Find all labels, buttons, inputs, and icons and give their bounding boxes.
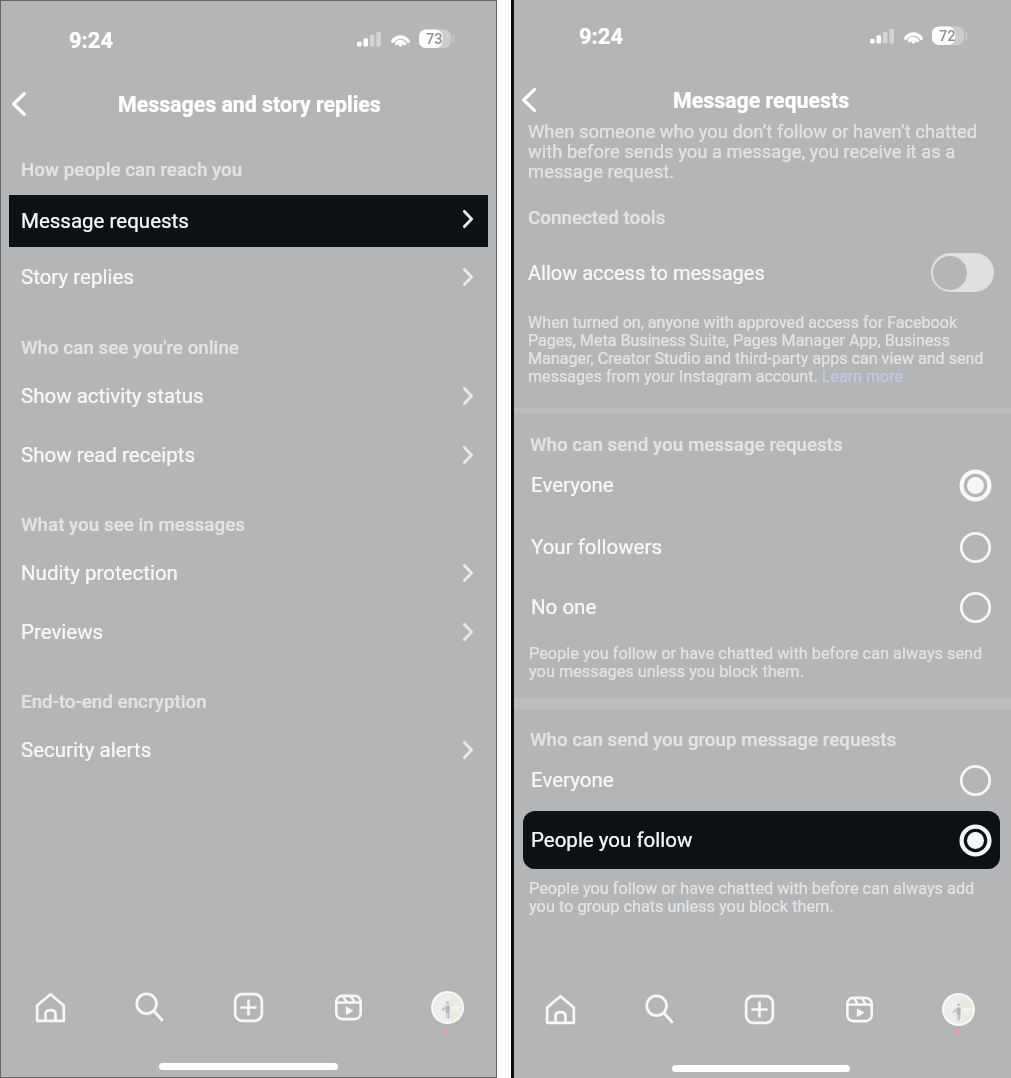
staticText: How people can reach you	[21, 159, 243, 181]
button[interactable]: Search	[635, 985, 683, 1033]
button[interactable]: Message requests	[9, 195, 488, 247]
staticText: People you follow or have chatted with b…	[529, 644, 989, 681]
staticText: Story replies	[21, 265, 134, 289]
button[interactable]: No one	[511, 581, 1011, 633]
staticText: 9:24	[579, 24, 624, 50]
button[interactable]: Show read receipts	[1, 428, 496, 482]
staticText: Who can see you're online	[21, 337, 239, 359]
staticText: Message requests	[673, 88, 850, 113]
staticText: Message requests	[21, 209, 189, 233]
button[interactable]: Show activity status	[1, 369, 496, 423]
staticText: Nudity protection	[21, 561, 178, 585]
staticText: 9:24	[69, 28, 114, 54]
staticText: Connected tools	[528, 207, 666, 229]
staticText: End-to-end encryption	[21, 691, 207, 713]
button[interactable]: Back	[519, 85, 539, 115]
staticText: Messages and story replies	[118, 92, 381, 117]
button[interactable]: Create	[735, 985, 783, 1033]
button[interactable]: Profile	[934, 985, 982, 1033]
staticText: When someone who you don’t follow or hav…	[528, 121, 999, 183]
staticText: Everyone	[531, 768, 614, 792]
staticText: What you see in messages	[21, 514, 245, 536]
button[interactable]: Previews	[1, 605, 496, 659]
button[interactable]: Your followers	[511, 521, 1011, 573]
button[interactable]: Create	[224, 983, 272, 1031]
staticText: Security alerts	[21, 738, 152, 762]
staticText: Show read receipts	[21, 443, 196, 467]
button[interactable]: Everyone	[511, 756, 1011, 804]
staticText: 73	[426, 31, 443, 48]
button[interactable]: Allow access to messages	[511, 246, 1011, 298]
button[interactable]: Profile	[423, 983, 471, 1031]
staticText: Show activity status	[21, 384, 204, 408]
button[interactable]: Everyone	[511, 459, 1011, 511]
staticText: People you follow or have chatted with b…	[529, 879, 997, 916]
staticText: 72	[939, 28, 956, 45]
button[interactable]: Back	[9, 89, 29, 119]
staticText: Who can send you group message requests	[530, 729, 897, 751]
staticText: People you follow	[531, 828, 693, 852]
button[interactable]: Reels	[835, 985, 883, 1033]
staticText: Allow access to messages	[528, 261, 765, 284]
staticText: Who can send you message requests	[530, 434, 843, 456]
staticText: Everyone	[531, 473, 614, 497]
button[interactable]: Allow access to messages	[931, 253, 994, 292]
staticText: Your followers	[531, 535, 662, 559]
staticText: No one	[531, 595, 597, 619]
button[interactable]: People you follow	[523, 811, 1000, 869]
button[interactable]: Home	[536, 985, 584, 1033]
button[interactable]: Search	[125, 983, 173, 1031]
staticText: Previews	[21, 620, 104, 644]
button[interactable]: Security alerts	[1, 723, 496, 777]
button[interactable]: Nudity protection	[1, 546, 496, 600]
button[interactable]: Story replies	[1, 250, 496, 304]
button[interactable]: Reels	[324, 983, 372, 1031]
staticText: When turned on, anyone with approved acc…	[528, 313, 999, 386]
button[interactable]: Home	[26, 983, 74, 1031]
